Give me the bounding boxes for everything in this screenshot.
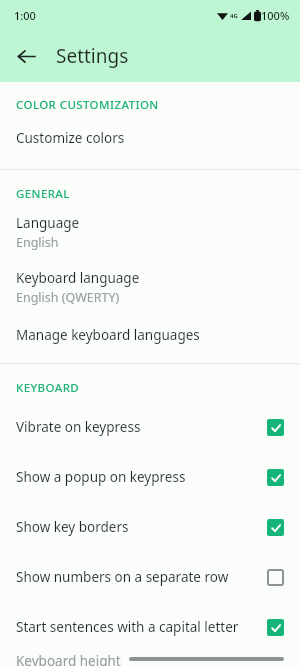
button[interactable]: Language <box>0 208 300 255</box>
button[interactable]: Show a popup on keypress <box>0 452 300 502</box>
staticText: Keyboard language <box>16 269 140 287</box>
staticText: English <box>16 234 59 251</box>
button[interactable]: Show key borders <box>0 502 300 552</box>
staticText: Show a popup on keypress <box>16 468 267 486</box>
button[interactable]: Customize colors <box>0 119 300 157</box>
button[interactable]: Show numbers on a separate row <box>0 552 300 602</box>
staticText: 1:00 <box>14 8 36 23</box>
staticText: Customize colors <box>16 129 125 147</box>
staticText: Language <box>16 214 80 232</box>
staticText: Keyboard height <box>16 652 121 666</box>
button[interactable]: Vibrate on keypress <box>0 402 300 452</box>
staticText: 100% <box>261 8 290 23</box>
button[interactable]: Manage keyboard languages <box>0 318 300 352</box>
staticText: KEYBOARD <box>16 380 300 396</box>
staticText: Show numbers on a separate row <box>16 568 267 586</box>
staticText: Settings <box>56 43 129 69</box>
button[interactable]: Start sentences with a capital letter <box>0 602 300 652</box>
staticText: GENERAL <box>16 186 300 202</box>
staticText: Manage keyboard languages <box>16 326 200 344</box>
staticText: Vibrate on keypress <box>16 418 267 436</box>
staticText: COLOR CUSTOMIZATION <box>16 97 300 113</box>
staticText: English (QWERTY) <box>16 289 120 306</box>
staticText: Start sentences with a capital letter <box>16 618 267 636</box>
button[interactable]: Keyboard language <box>0 263 300 310</box>
button[interactable]: Back <box>8 38 44 74</box>
staticText: Show key borders <box>16 518 267 536</box>
button[interactable]: Keyboard height <box>0 652 300 666</box>
staticText: 4G <box>230 12 238 20</box>
